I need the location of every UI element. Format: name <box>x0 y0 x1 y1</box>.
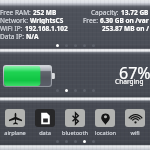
button[interactable]: Bluetooth <box>60 109 90 137</box>
staticText: Capacity: <box>91 8 121 16</box>
other: Wi-Fi <box>125 109 145 127</box>
staticText: Network: <box>0 16 30 24</box>
button[interactable]: Cellular data <box>30 109 60 137</box>
staticText: location <box>95 129 116 137</box>
staticText: 192.168.1.102 <box>25 24 68 32</box>
other: Bluetooth <box>65 109 85 127</box>
staticText: Data IP: <box>0 32 26 40</box>
staticText: 6.30 GB on /var <box>100 16 149 24</box>
staticText: N/A <box>26 32 39 40</box>
button[interactable]: Wi-Fi <box>120 109 150 137</box>
button[interactable]: Location <box>90 109 120 137</box>
staticText: bluetooth <box>62 129 88 137</box>
staticText: 67% <box>119 62 150 84</box>
staticText: Free: <box>83 16 100 24</box>
other: Location <box>95 109 115 127</box>
other: Cellular data <box>35 109 55 127</box>
staticText: 253.87 MB on / <box>102 24 149 32</box>
staticText: Charging <box>115 77 144 86</box>
staticText: data <box>39 129 51 137</box>
staticText: Free RAM: <box>0 8 33 16</box>
staticText: airplane <box>4 129 26 137</box>
staticText: wifi <box>130 129 140 137</box>
staticText: WrightsCS <box>30 16 64 24</box>
other: Airplane mode <box>5 109 25 127</box>
staticText: 13.72 GB <box>121 8 149 16</box>
staticText: WiFi IP: <box>0 24 25 32</box>
button[interactable]: Airplane mode <box>0 109 30 137</box>
staticText: 252 MB <box>33 8 57 16</box>
